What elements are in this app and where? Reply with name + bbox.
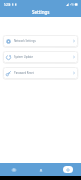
staticText: 1:23 (4, 3, 10, 7)
staticText: Settings (32, 9, 50, 15)
staticText: Network Settings (14, 39, 36, 43)
button[interactable]: Password Reset (3, 67, 78, 79)
button[interactable]: Camera (0, 163, 27, 176)
button[interactable]: System Update (3, 51, 78, 63)
button[interactable]: Network Settings (3, 35, 78, 47)
button[interactable]: Upload (27, 163, 54, 176)
staticText: System Update (14, 55, 34, 59)
staticText: Password Reset (14, 71, 34, 75)
button[interactable]: Settings (54, 163, 81, 176)
